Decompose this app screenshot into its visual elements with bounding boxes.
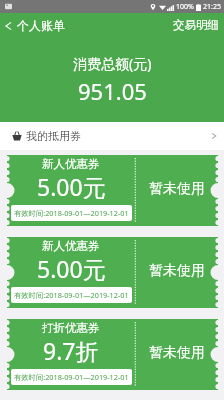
staticText: 新人优惠券 xyxy=(42,157,100,171)
button[interactable]: Back xyxy=(0,18,71,33)
staticText: 100% xyxy=(176,2,194,12)
staticText: 5.00元 xyxy=(37,171,106,202)
staticText: 5.00元 xyxy=(37,253,106,284)
other: Back xyxy=(5,21,12,31)
button[interactable]: 我的抵用券 xyxy=(0,122,224,150)
button[interactable]: 打折优惠券 xyxy=(7,319,218,390)
staticText: 有效时间:2018-09-01—2019-12-01 xyxy=(14,208,129,218)
button[interactable]: 新人优惠券 xyxy=(7,155,218,226)
staticText: 有效时间:2018-09-01—2019-12-01 xyxy=(14,290,129,300)
staticText: 个人账单 xyxy=(17,18,65,33)
staticText: 我的抵用券 xyxy=(26,129,81,143)
staticText: 消费总额(元) xyxy=(73,54,152,73)
staticText: 9.7折 xyxy=(43,335,99,366)
staticText: 21:25 xyxy=(203,2,221,12)
staticText: 交易明细 xyxy=(173,18,219,32)
staticText: 新人优惠券 xyxy=(42,239,100,253)
staticText: 打折优惠券 xyxy=(42,321,100,335)
staticText: 有效时间:2018-09-01—2019-12-01 xyxy=(14,372,129,382)
staticText: 暂未使用 xyxy=(149,180,205,198)
staticText: 暂未使用 xyxy=(149,262,205,280)
staticText: 951.05 xyxy=(78,76,147,106)
button[interactable]: 交易明细 xyxy=(165,14,224,36)
staticText: 暂未使用 xyxy=(149,344,205,362)
button[interactable]: 新人优惠券 xyxy=(7,237,218,308)
